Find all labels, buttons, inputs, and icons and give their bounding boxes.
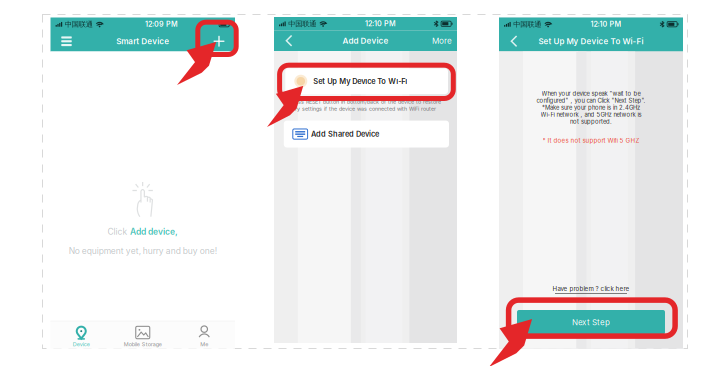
staticText: Have problem ? click here	[552, 285, 629, 293]
staticText: Add Shared Device	[311, 129, 379, 138]
staticText: 中国联通	[513, 20, 541, 29]
staticText: press RESET button in bottom/back of the…	[290, 99, 441, 105]
staticText: Set Up My Device To Wi-Fi	[538, 36, 643, 46]
staticText: Click	[107, 226, 127, 237]
staticText: *Make sure your phone is in 2.4GHz	[542, 104, 640, 111]
button[interactable]: Next Step	[517, 310, 665, 334]
button[interactable]: Me	[173, 326, 235, 347]
staticText: 12:10 PM	[365, 19, 396, 28]
button[interactable]: Back	[279, 31, 299, 51]
button[interactable]: Set Up My Device To Wi-Fi	[285, 68, 448, 94]
staticText: 12:09 PM	[145, 20, 178, 29]
staticText: not supported.	[570, 118, 612, 125]
button[interactable]: Menu	[55, 31, 77, 51]
staticText: configured" , you can Click "Next Step".	[536, 97, 645, 104]
staticText: Add device,	[130, 226, 178, 237]
staticText: Set Up My Device To Wi-Fi	[313, 77, 407, 86]
staticText: Device	[73, 341, 90, 347]
staticText: Wi-Fi network , and 5GHz network is	[540, 111, 641, 118]
staticText: 12:10 PM	[590, 20, 621, 29]
staticText: * It does not support Wifi 5 GHZ	[542, 137, 639, 144]
button[interactable]: Add Shared Device	[284, 121, 449, 147]
staticText: ry settings if the device was connected …	[295, 106, 436, 112]
staticText: When your device speak "wait to be	[541, 90, 640, 97]
staticText: Smart Device	[116, 36, 169, 46]
button[interactable]: Have problem ? click here	[552, 285, 629, 294]
button[interactable]: Mobile Storage	[112, 326, 173, 347]
button[interactable]: Add device	[208, 31, 230, 51]
staticText: Next Step	[572, 317, 610, 327]
staticText: 中国联通	[65, 20, 93, 29]
staticText: Mobile Storage	[124, 341, 162, 347]
staticText: Me	[200, 341, 208, 347]
button[interactable]: More	[432, 31, 452, 51]
staticText: Add Device	[342, 36, 388, 46]
staticText: No equipment yet, hurry and buy one!	[69, 246, 217, 256]
button[interactable]: Device	[50, 326, 112, 347]
button[interactable]: Back	[504, 31, 524, 51]
staticText: More	[432, 36, 452, 46]
staticText: 中国联通	[288, 19, 316, 28]
